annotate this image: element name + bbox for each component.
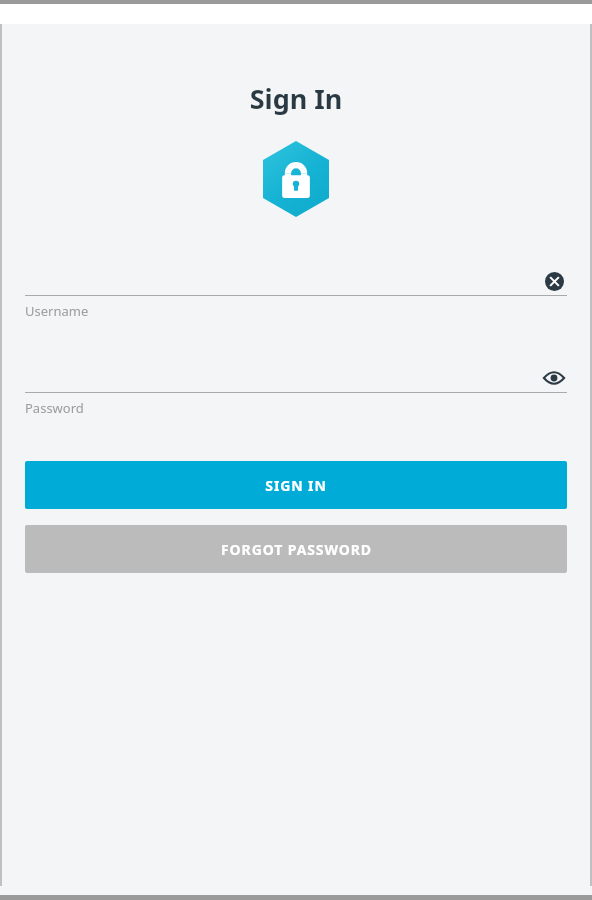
staticText: Password xyxy=(25,399,84,417)
other: Secure sign in xyxy=(263,141,329,217)
staticText: SIGN IN xyxy=(265,476,327,495)
button[interactable]: Show password xyxy=(541,365,567,391)
staticText: Sign In xyxy=(0,80,592,117)
button[interactable]: Show password xyxy=(25,364,567,392)
button[interactable]: FORGOT PASSWORD xyxy=(25,525,567,573)
button[interactable]: SIGN IN xyxy=(25,461,567,509)
button[interactable]: Clear username xyxy=(541,268,567,294)
staticText: Username xyxy=(25,302,89,320)
button[interactable]: Clear username xyxy=(25,267,567,295)
staticText: FORGOT PASSWORD xyxy=(221,540,372,559)
